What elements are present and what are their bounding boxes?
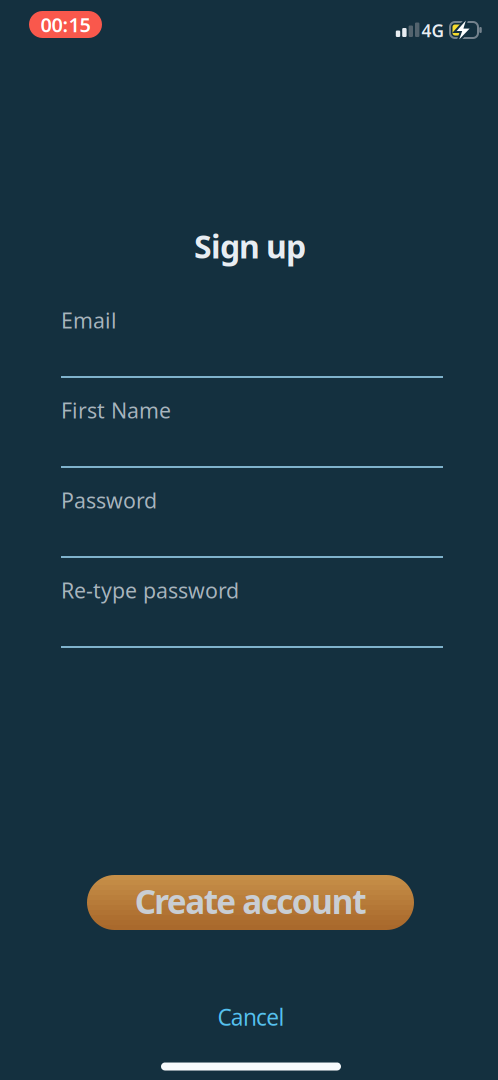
button[interactable]: Email [61, 306, 443, 378]
staticText: 4G [421, 19, 444, 42]
button[interactable]: Create account [87, 875, 414, 930]
button[interactable]: Password [61, 486, 443, 558]
button[interactable]: Re-type password [61, 576, 443, 648]
staticText: First Name [61, 396, 171, 424]
staticText: Password [61, 486, 157, 514]
button[interactable]: First Name [61, 396, 443, 468]
button[interactable]: 00:15 [29, 11, 102, 38]
button[interactable]: Cancel [217, 1002, 284, 1032]
staticText: Sign up [194, 225, 306, 267]
staticText: Cancel [217, 1002, 284, 1032]
staticText: Re-type password [61, 576, 239, 604]
staticText: Create account [135, 879, 366, 923]
staticText: 00:15 [40, 11, 90, 38]
staticText: Email [61, 306, 117, 334]
